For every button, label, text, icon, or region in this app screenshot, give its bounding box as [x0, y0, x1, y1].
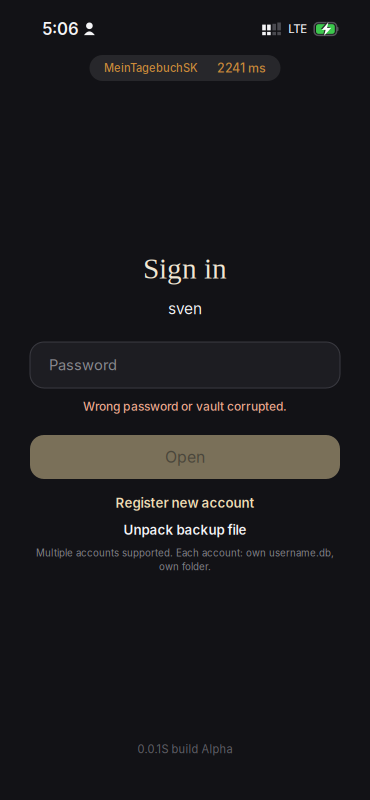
staticText: Unpack backup file [123, 522, 246, 538]
staticText: 5:06 [42, 19, 79, 39]
staticText: LTE [288, 22, 307, 36]
staticText: Open [165, 447, 205, 467]
staticText: 2241 ms [217, 60, 266, 75]
button[interactable]: Unpack backup file [123, 523, 246, 537]
staticText: Register new account [115, 495, 254, 511]
button[interactable]: Open [30, 435, 340, 479]
staticText: Multiple accounts supported. Each accoun… [36, 547, 334, 559]
staticText: sven [168, 299, 202, 318]
staticText: own folder. [159, 561, 211, 573]
staticText: Password [49, 356, 117, 374]
staticText: 0.0.1S build Alpha [137, 743, 232, 756]
staticText: Wrong password or vault corrupted. [83, 399, 287, 414]
button[interactable]: Register new account [115, 496, 254, 510]
staticText: Sign in [143, 252, 227, 285]
staticText: MeinTagebuchSK [104, 61, 198, 75]
